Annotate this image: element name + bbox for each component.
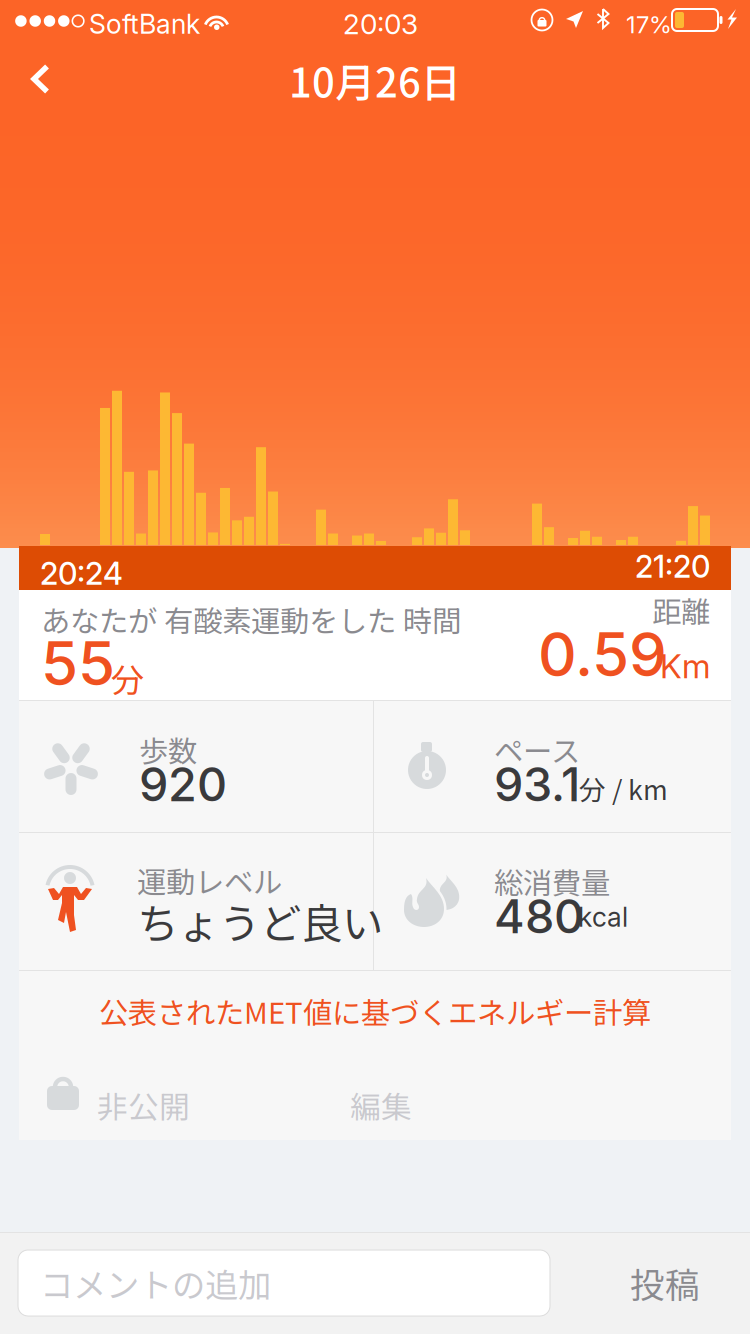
staticText: あなたが 有酸素運動をした 時間 — [41, 598, 461, 640]
button[interactable]: Back — [0, 40, 86, 120]
button[interactable]: 公表されたMET値に基づくエネルギー計算 — [19, 971, 731, 1051]
staticText: コメントの追加 — [40, 1259, 271, 1307]
staticText: 0.59 — [538, 618, 667, 691]
staticText: ちょうど良い — [137, 891, 383, 951]
staticText: 距離 — [652, 589, 710, 631]
button[interactable]: 投稿 — [590, 1250, 740, 1316]
staticText: 分 — [111, 654, 144, 702]
staticText: 93.1 — [494, 756, 580, 812]
staticText: 編集 — [350, 1083, 412, 1127]
staticText: 非公開 — [97, 1083, 190, 1127]
staticText: ペース — [494, 728, 580, 770]
staticText: 投稿 — [630, 1258, 700, 1308]
staticText: 920 — [139, 756, 227, 812]
staticText: 480 — [494, 888, 584, 944]
button[interactable]: 非公開 — [19, 1052, 249, 1140]
staticText: 10月26日 — [289, 51, 461, 109]
staticText: Km — [660, 646, 710, 686]
staticText: 歩数 — [139, 728, 197, 770]
staticText: 20:03 — [343, 7, 418, 41]
staticText: 21:20 — [635, 548, 710, 585]
button[interactable]: 編集 — [330, 1052, 470, 1140]
button[interactable]: コメントの追加 — [18, 1250, 550, 1316]
staticText: SoftBank — [89, 8, 200, 40]
staticText: 総消費量 — [494, 860, 610, 902]
staticText: 分 / km — [579, 769, 668, 808]
staticText: 55 — [41, 627, 115, 700]
staticText: 17% — [626, 10, 672, 39]
staticText: 運動レベル — [137, 859, 282, 901]
staticText: 20:24 — [40, 555, 123, 592]
staticText: 公表されたMET値に基づくエネルギー計算 — [99, 990, 651, 1032]
staticText: kcal — [578, 901, 628, 933]
